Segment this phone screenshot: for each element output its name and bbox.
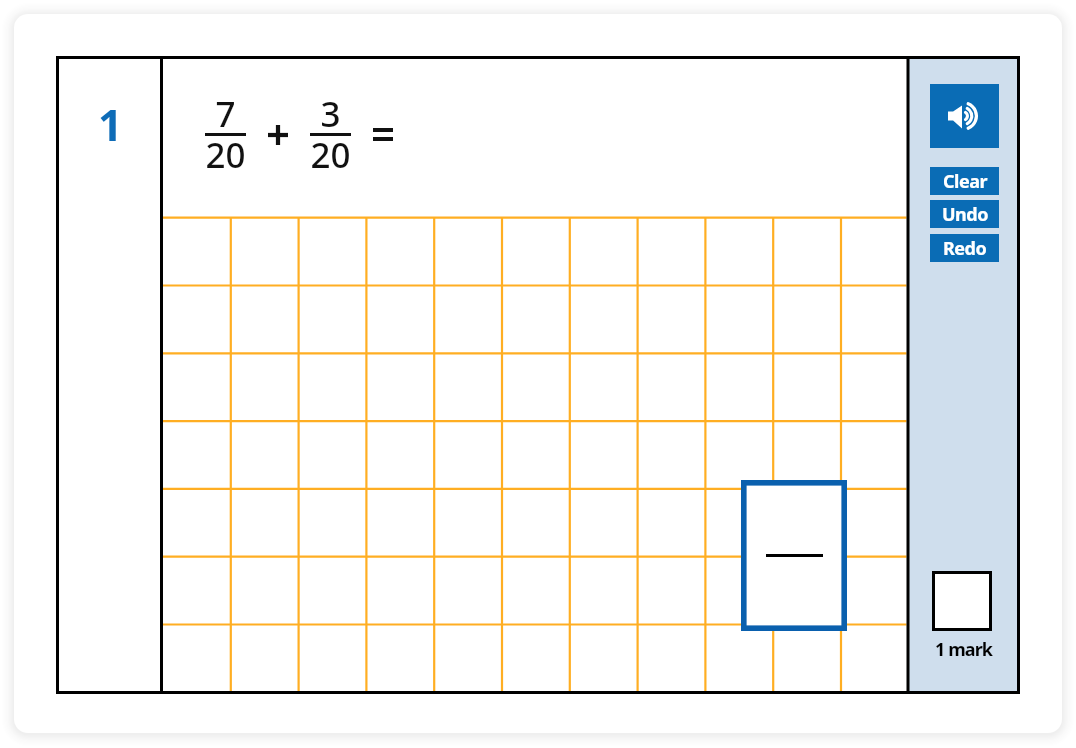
staticText: Redo bbox=[943, 236, 987, 261]
staticText: Undo bbox=[942, 202, 988, 227]
button[interactable]: Answer box bbox=[741, 480, 847, 631]
staticText: 1 bbox=[98, 95, 123, 154]
staticText: 1 mark bbox=[935, 637, 993, 662]
staticText: 20 bbox=[205, 131, 246, 179]
staticText: 7 bbox=[215, 90, 236, 138]
button[interactable]: Redo bbox=[930, 234, 999, 262]
button[interactable]: Read the question aloud bbox=[930, 84, 999, 148]
button[interactable]: Clear bbox=[930, 167, 999, 195]
staticText: 20 bbox=[310, 131, 351, 179]
button[interactable]: Undo bbox=[930, 200, 999, 228]
staticText: 3 bbox=[320, 90, 341, 138]
staticText: Clear bbox=[943, 169, 987, 194]
